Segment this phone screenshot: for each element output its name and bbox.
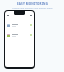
staticText: EASY MONITORING	[17, 2, 48, 6]
staticText: control and monitor your devices easily	[12, 7, 53, 10]
button[interactable]: Toggle	[5, 33, 34, 37]
button[interactable]: Toggle	[5, 23, 34, 27]
